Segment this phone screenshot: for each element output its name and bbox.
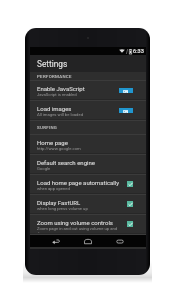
- staticText: Display FastURL: [37, 199, 81, 206]
- button[interactable]: Back: [50, 235, 62, 247]
- button[interactable]: Checked: [127, 221, 133, 227]
- staticText: ON: [123, 89, 129, 93]
- button[interactable]: Default search engine: [30, 155, 146, 173]
- button[interactable]: ON: [119, 108, 133, 113]
- staticText: when long press volume up: [37, 206, 88, 211]
- staticText: Home page: [37, 139, 68, 146]
- staticText: Zoom page in and out using volume up and…: [37, 226, 127, 235]
- button[interactable]: Home page: [30, 135, 146, 153]
- staticText: Google: [37, 166, 51, 171]
- button[interactable]: Display FastURL: [30, 195, 146, 213]
- staticText: JavaScript is enabled: [37, 92, 77, 97]
- button[interactable]: Checked: [127, 181, 133, 187]
- button[interactable]: Settings: [30, 55, 146, 72]
- button[interactable]: Recent apps: [114, 235, 126, 247]
- button[interactable]: Zoom using volume controls: [30, 215, 146, 233]
- staticText: http://www.google.com: [37, 146, 81, 151]
- staticText: Enable JavaScript: [37, 85, 85, 92]
- button[interactable]: Load home page automatically: [30, 175, 146, 193]
- staticText: Default search engine: [37, 159, 95, 166]
- button[interactable]: Checked: [127, 201, 133, 207]
- button[interactable]: Home: [82, 235, 94, 247]
- button[interactable]: Load images: [30, 101, 146, 119]
- staticText: 6:33: [133, 48, 144, 55]
- button[interactable]: ON: [119, 88, 133, 93]
- staticText: Zoom using volume controls: [37, 219, 113, 226]
- staticText: All images will be loaded: [37, 112, 84, 117]
- staticText: Load home page automatically: [37, 179, 120, 186]
- staticText: when app opened: [37, 186, 70, 191]
- staticText: ON: [123, 109, 129, 113]
- staticText: Load images: [37, 105, 72, 112]
- staticText: PERFORMANCE: [37, 74, 72, 79]
- button[interactable]: Enable JavaScript: [30, 81, 146, 99]
- staticText: SURFING: [37, 125, 58, 130]
- staticText: Settings: [37, 59, 68, 69]
